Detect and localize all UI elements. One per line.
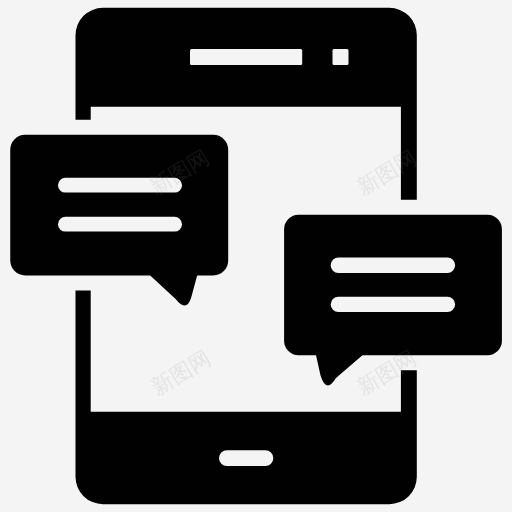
button[interactable]: Chat conversation on a smartphone — [0, 0, 512, 512]
